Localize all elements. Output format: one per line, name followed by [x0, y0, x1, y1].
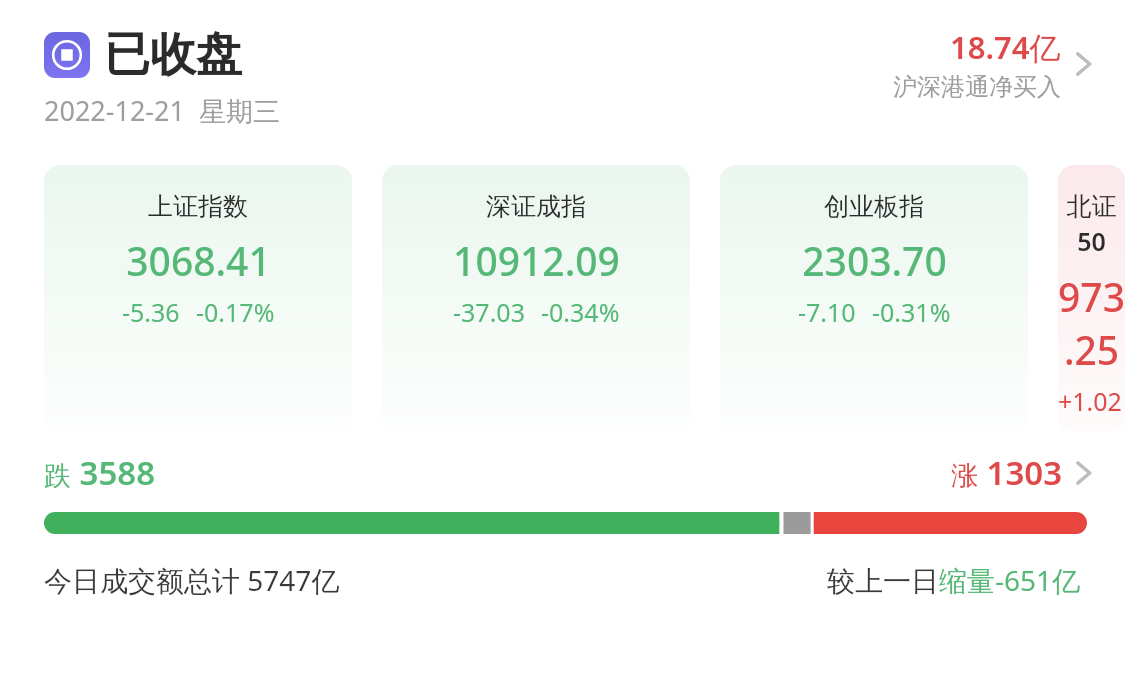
- staticText: -5.36: [122, 295, 180, 329]
- staticText: 涨 1303: [951, 450, 1063, 495]
- staticText: -37.03: [453, 295, 525, 329]
- button[interactable]: 上证指数: [44, 165, 352, 432]
- staticText: 3068.41: [126, 234, 271, 287]
- staticText: 18.74亿: [950, 26, 1061, 68]
- staticText: 沪深港通净买入: [893, 72, 1061, 102]
- staticText: 创业板指: [824, 191, 924, 222]
- staticText: 深证成指: [486, 191, 586, 222]
- staticText: -7.10: [798, 295, 856, 329]
- staticText: -0.34%: [541, 295, 620, 329]
- staticText: 10912.09: [453, 234, 620, 287]
- button[interactable]: 18.74亿: [893, 26, 1097, 102]
- staticText: +1.02: [1058, 384, 1122, 418]
- staticText: 上证指数: [148, 191, 248, 222]
- staticText: 2303.70: [802, 234, 947, 287]
- other: 沪深港通详情: [1071, 43, 1097, 85]
- staticText: -0.31%: [872, 295, 951, 329]
- staticText: 今日成交额总计 5747亿: [44, 561, 340, 599]
- staticText: 973.25: [1058, 270, 1125, 376]
- staticText: 较上一日缩量-651亿: [827, 561, 1081, 599]
- staticText: 跌 3588: [44, 450, 156, 495]
- staticText: 北证50: [1058, 191, 1125, 258]
- button[interactable]: 北证50: [1058, 165, 1125, 432]
- staticText: 2022-12-21 星期三: [44, 92, 280, 129]
- button[interactable]: 跌 3588: [44, 432, 1097, 512]
- staticText: -0.17%: [196, 295, 275, 329]
- staticText: 已收盘: [104, 26, 242, 84]
- button[interactable]: 深证成指: [382, 165, 690, 432]
- button[interactable]: 创业板指: [720, 165, 1028, 432]
